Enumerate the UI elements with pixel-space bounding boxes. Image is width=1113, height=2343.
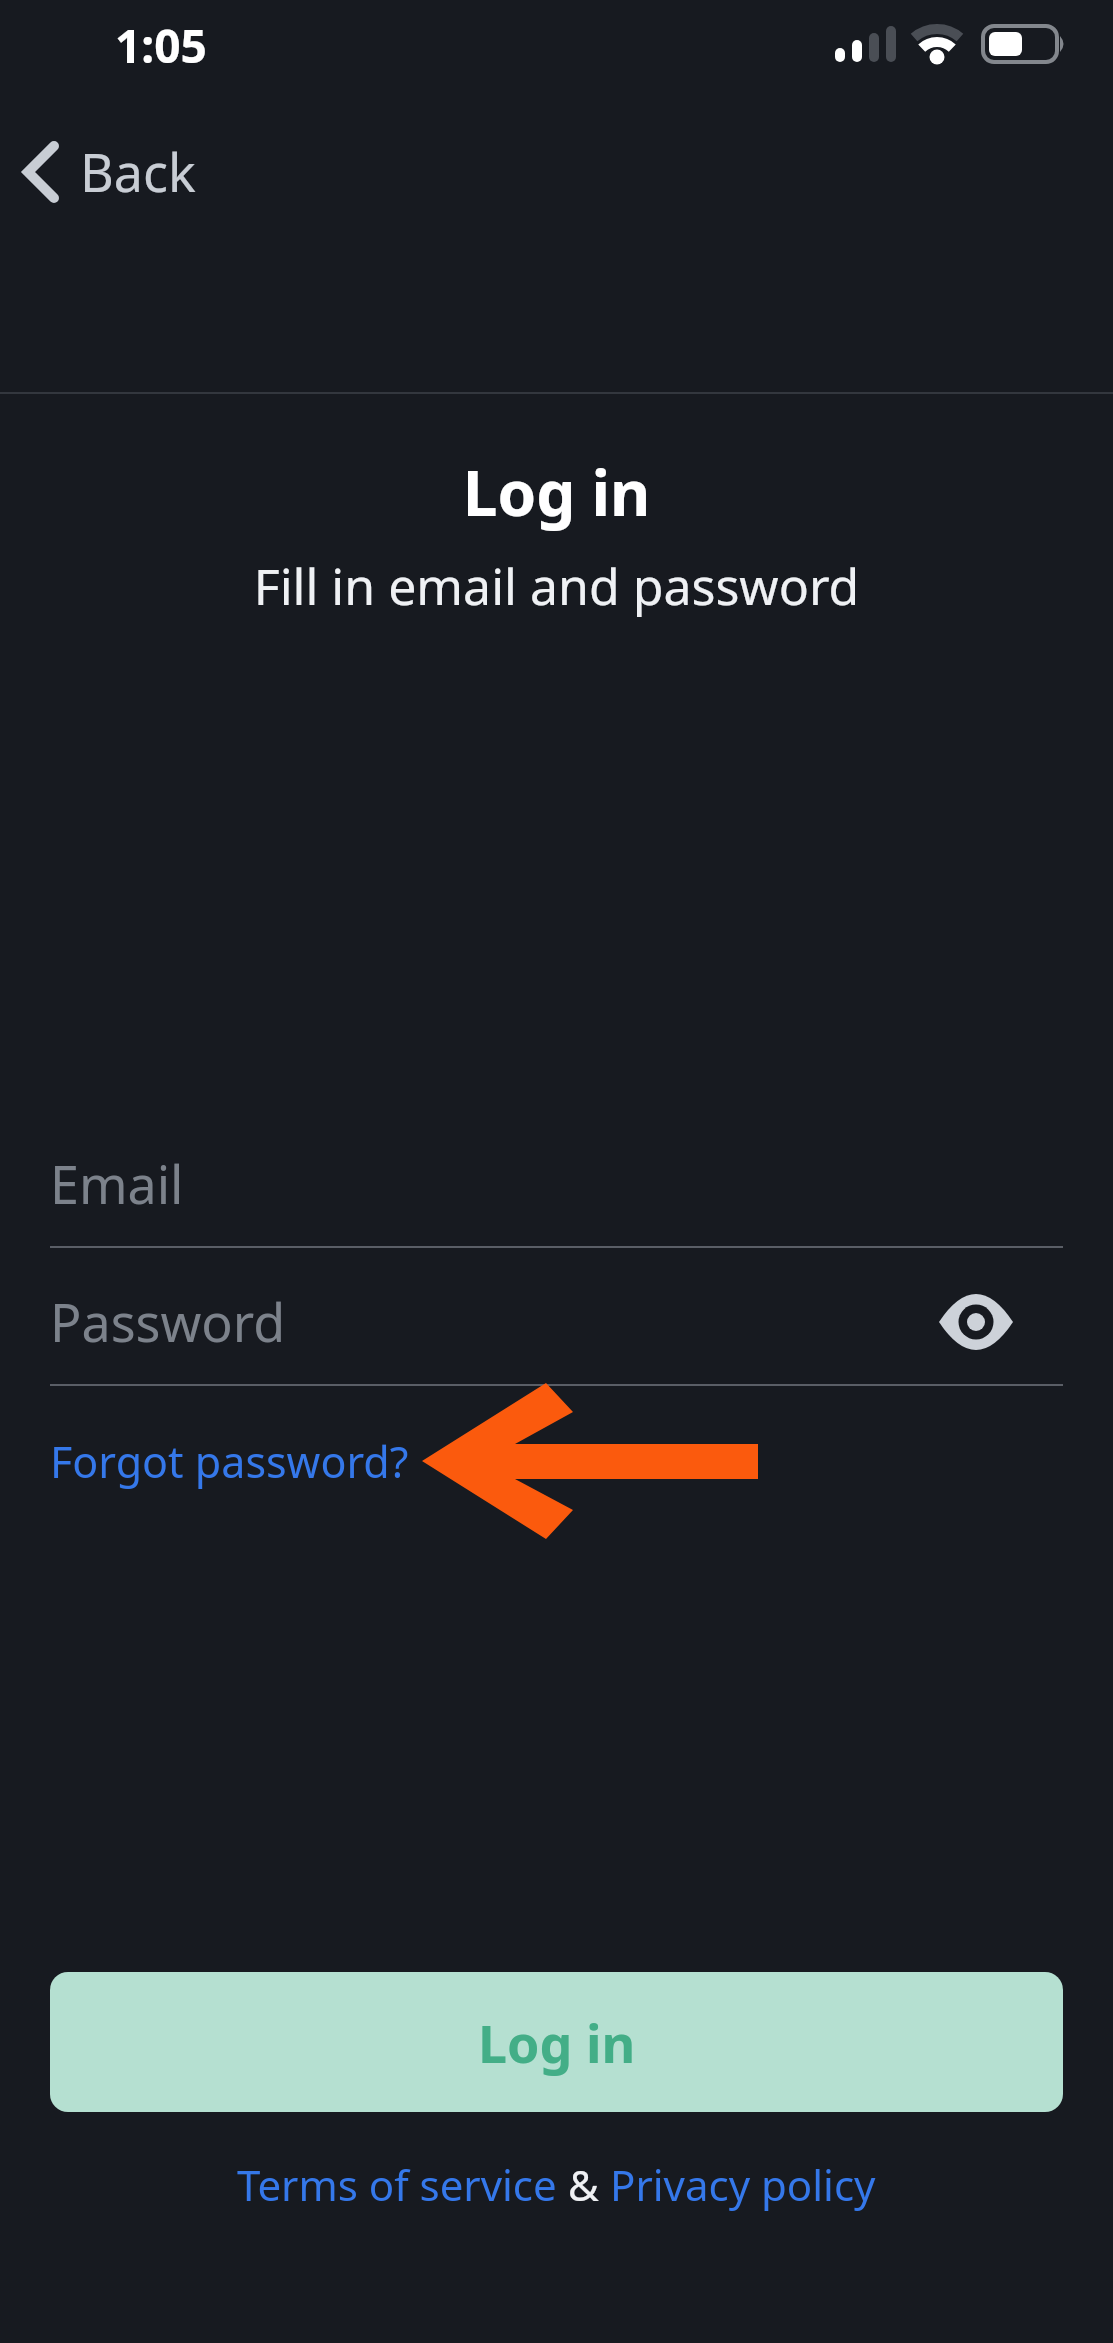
button[interactable] xyxy=(935,1290,1017,1354)
button[interactable]: Forgot password? xyxy=(46,1428,413,1495)
button[interactable]: Terms of service xyxy=(237,2156,557,2213)
staticText: Email xyxy=(50,1148,184,1219)
button[interactable]: Log in xyxy=(50,1972,1063,2112)
staticText: Back xyxy=(80,136,196,207)
button[interactable]: Privacy policy xyxy=(610,2156,876,2213)
staticText: Fill in email and password xyxy=(0,552,1113,620)
button[interactable]: Back xyxy=(16,132,200,211)
staticText: Log in xyxy=(0,450,1113,534)
staticText: Log in xyxy=(478,2007,636,2078)
staticText: Password xyxy=(50,1286,286,1357)
staticText: 1:05 xyxy=(115,14,207,77)
staticText: & xyxy=(557,2156,610,2213)
